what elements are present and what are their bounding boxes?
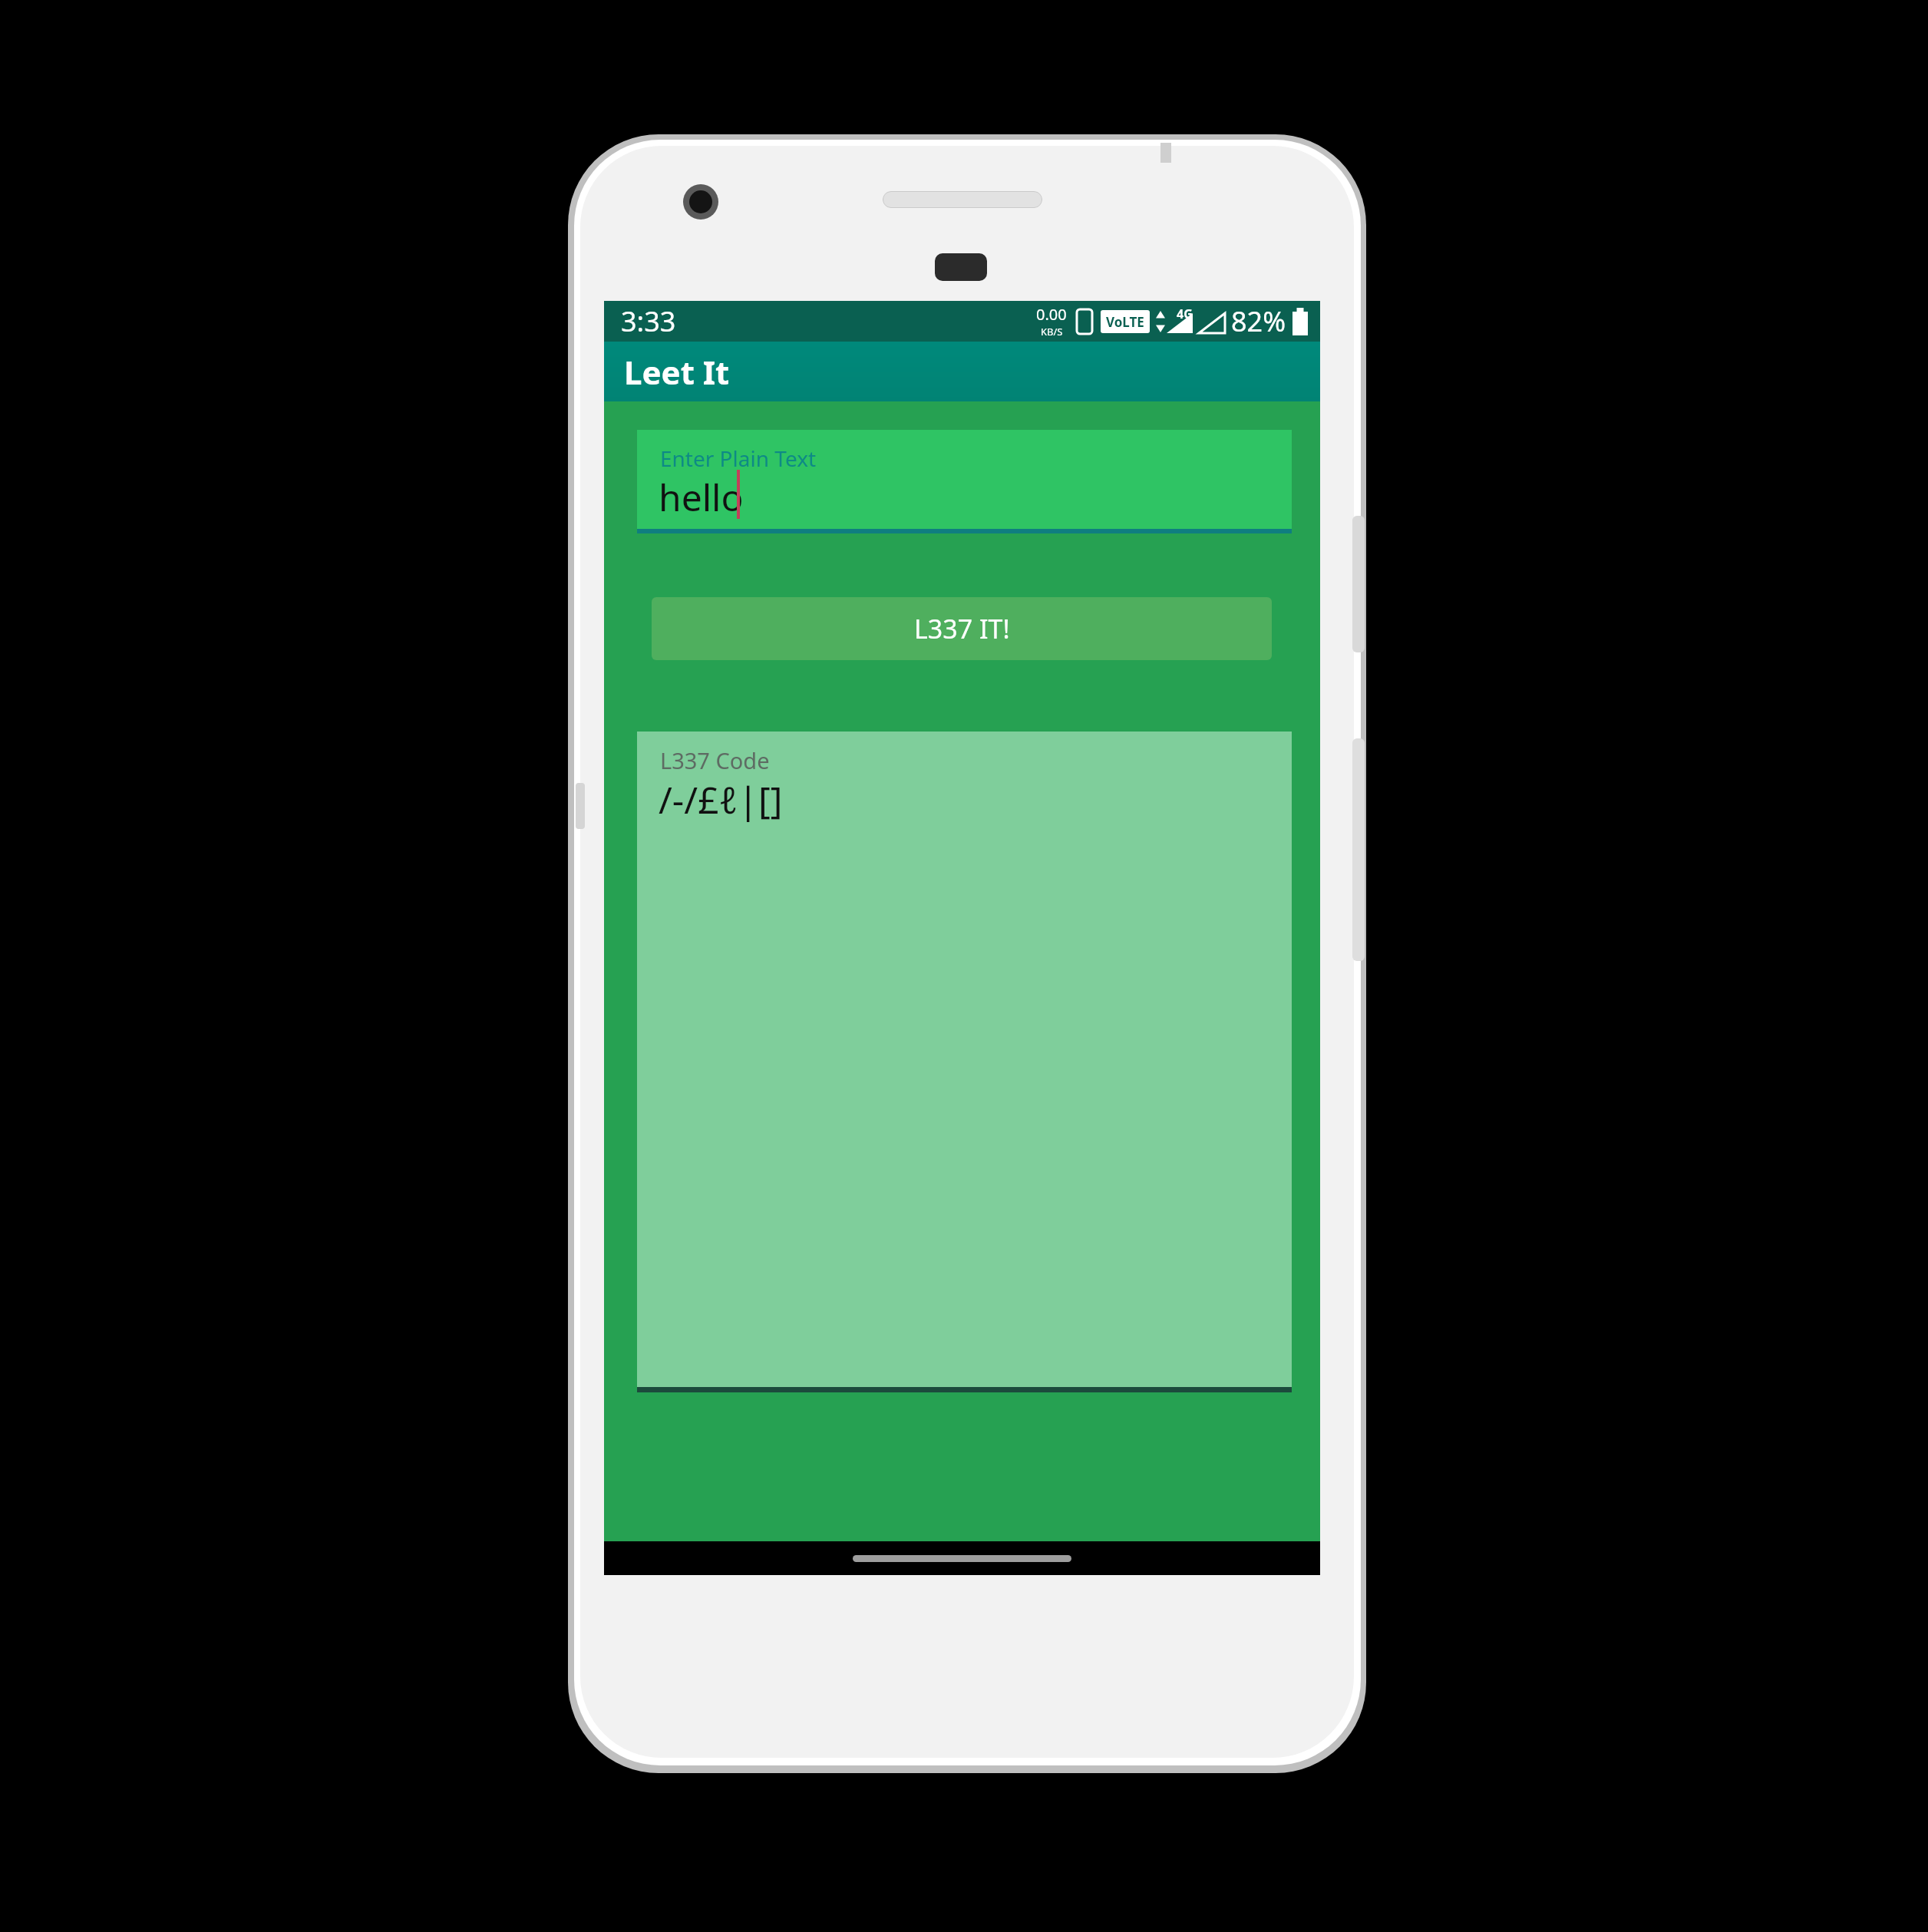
button[interactable]: Leet It: [604, 342, 1320, 401]
button[interactable]: L337 Code: [637, 732, 1292, 1387]
staticText: Leet It: [624, 350, 730, 394]
button[interactable]: L337 IT!: [652, 597, 1272, 660]
staticText: KB/S: [1041, 325, 1063, 339]
staticText: 82%: [1231, 302, 1286, 340]
button[interactable]: Enter Plain Text: [637, 430, 1292, 529]
staticText: Enter Plain Text: [660, 444, 817, 473]
staticText: L337 IT!: [914, 611, 1010, 646]
button[interactable]: Home gesture: [853, 1555, 1071, 1562]
staticText: /-/£ℓ|[]: [659, 774, 783, 824]
staticText: 0.00: [1036, 304, 1067, 325]
staticText: 3:33: [621, 302, 676, 340]
staticText: 4G: [1177, 305, 1193, 322]
staticText: L337 Code: [660, 745, 770, 775]
staticText: hello: [659, 472, 744, 522]
staticText: VoLTE: [1106, 313, 1144, 331]
